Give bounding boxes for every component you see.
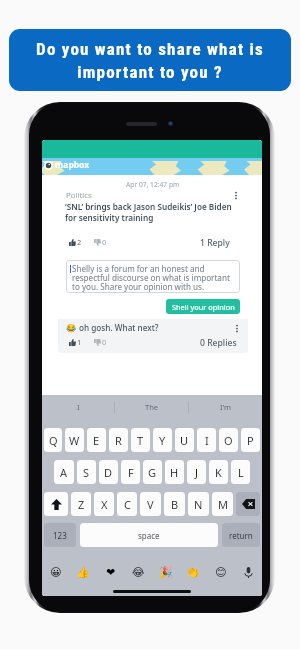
- staticText: space: [138, 530, 160, 541]
- button[interactable]: A: [54, 460, 74, 484]
- button[interactable]: X: [94, 492, 114, 516]
- button[interactable]: 🎉: [159, 565, 173, 579]
- button[interactable]: The: [115, 395, 188, 419]
- button[interactable]: More options: [231, 190, 240, 200]
- button[interactable]: 2: [69, 237, 82, 247]
- button[interactable]: H: [165, 460, 184, 484]
- staticText: G: [148, 465, 157, 480]
- staticText: return: [229, 530, 253, 541]
- staticText: N: [194, 497, 203, 512]
- button[interactable]: O: [219, 428, 238, 452]
- button[interactable]: Shift: [44, 492, 68, 516]
- button[interactable]: T: [131, 428, 150, 452]
- button[interactable]: K: [209, 460, 228, 484]
- button[interactable]: Backspace: [236, 492, 260, 516]
- button[interactable]: M: [212, 492, 233, 516]
- staticText: I: [77, 402, 80, 412]
- button[interactable]: S: [77, 460, 96, 484]
- button[interactable]: Shelly is a forum for an honest and resp…: [66, 260, 240, 293]
- staticText: Z: [78, 497, 85, 512]
- button[interactable]: 👍: [76, 565, 90, 579]
- button[interactable]: ❤️: [104, 565, 118, 579]
- staticText: 123: [53, 530, 67, 541]
- staticText: 👏: [186, 566, 200, 579]
- button[interactable]: 123: [44, 523, 76, 547]
- button[interactable]: B: [164, 492, 185, 516]
- staticText: B: [171, 497, 179, 512]
- staticText: R: [115, 433, 122, 448]
- button[interactable]: Q: [44, 428, 62, 452]
- staticText: The: [145, 402, 159, 412]
- button[interactable]: D: [99, 460, 118, 484]
- staticText: Y: [159, 433, 166, 448]
- staticText: U: [180, 433, 189, 448]
- button[interactable]: C: [117, 492, 137, 516]
- staticText: 👍: [76, 566, 90, 579]
- staticText: V: [147, 497, 154, 512]
- staticText: E: [93, 433, 100, 448]
- button[interactable]: Shell your opinion: [166, 299, 240, 314]
- staticText: X: [101, 497, 108, 512]
- button[interactable]: More options: [232, 323, 241, 333]
- button[interactable]: P: [241, 428, 260, 452]
- staticText: 😊: [215, 566, 227, 579]
- button[interactable]: Microphone: [241, 565, 255, 579]
- button[interactable]: 👏: [186, 565, 200, 579]
- button[interactable]: 😊: [214, 565, 228, 579]
- staticText: 0 Replies: [200, 337, 237, 349]
- staticText: Apr 07, 12:47 pm: [126, 180, 180, 189]
- staticText: 1 Reply: [200, 237, 230, 249]
- staticText: ❤️: [106, 566, 116, 579]
- staticText: 0: [102, 337, 107, 347]
- button[interactable]: 😂: [131, 565, 145, 579]
- button[interactable]: F: [121, 460, 140, 484]
- staticText: Shell your opinion: [172, 302, 235, 312]
- button[interactable]: V: [140, 492, 161, 516]
- staticText: C: [124, 497, 131, 512]
- button[interactable]: Do you want to share what is important t…: [9, 29, 291, 91]
- staticText: T: [137, 433, 144, 448]
- button[interactable]: 0: [94, 237, 107, 247]
- button[interactable]: J: [187, 460, 206, 484]
- button[interactable]: 😀: [49, 565, 63, 579]
- button[interactable]: 1: [69, 337, 82, 347]
- button[interactable]: 0: [94, 337, 107, 347]
- button[interactable]: Y: [153, 428, 172, 452]
- staticText: I: [205, 433, 209, 448]
- staticText: 😂: [66, 323, 77, 333]
- staticText: K: [215, 465, 222, 480]
- staticText: W: [69, 433, 80, 448]
- button[interactable]: I: [42, 395, 114, 419]
- staticText: H: [170, 465, 179, 480]
- button[interactable]: W: [65, 428, 84, 452]
- staticText: P: [247, 433, 254, 448]
- staticText: O: [224, 433, 233, 448]
- staticText: 🎉: [159, 566, 173, 579]
- button[interactable]: I: [197, 428, 216, 452]
- button[interactable]: space: [80, 523, 218, 547]
- button[interactable]: N: [188, 492, 209, 516]
- staticText: D: [104, 465, 113, 480]
- staticText: oh gosh. What next?: [79, 322, 159, 333]
- staticText: 2: [77, 237, 82, 247]
- staticText: Q: [49, 433, 58, 448]
- staticText: mapbox: [55, 159, 90, 171]
- staticText: S: [83, 465, 90, 480]
- staticText: Politics: [66, 190, 92, 201]
- staticText: 😂: [132, 566, 145, 579]
- staticText: 0: [102, 237, 107, 247]
- staticText: M: [218, 497, 228, 512]
- button[interactable]: I'm: [189, 395, 262, 419]
- staticText: F: [128, 465, 134, 480]
- button[interactable]: E: [87, 428, 106, 452]
- staticText: 😀: [50, 566, 62, 579]
- staticText: Shelly is a forum for an honest and resp…: [72, 263, 232, 292]
- button[interactable]: U: [175, 428, 194, 452]
- button[interactable]: return: [222, 523, 260, 547]
- staticText: ‘SNL’ brings back Jason Sudeikis’ Joe Bi…: [65, 201, 235, 223]
- button[interactable]: L: [231, 460, 250, 484]
- button[interactable]: Z: [71, 492, 91, 516]
- button[interactable]: G: [143, 460, 162, 484]
- button[interactable]: R: [109, 428, 128, 452]
- staticText: J: [195, 465, 199, 480]
